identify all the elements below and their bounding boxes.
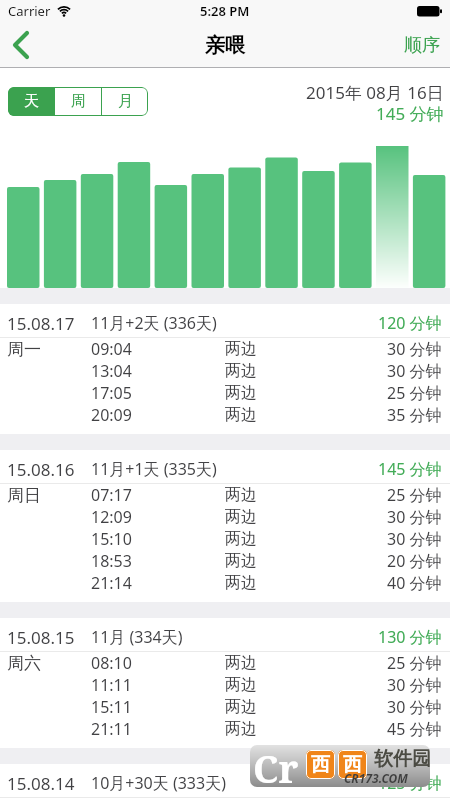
staticText: 21:14 [91,572,132,594]
staticText: 120 分钟 [378,312,442,334]
staticText: 30 分钟 [387,674,442,696]
staticText: 两边 [225,653,257,673]
staticText: 18:53 [91,550,132,572]
button[interactable]: 天 [8,87,54,116]
staticText: 15.08.16 [7,458,75,480]
button[interactable]: 周日 [0,484,450,506]
staticText: 20:09 [91,404,132,426]
staticText: 145 分钟 [378,458,442,480]
staticText: 10月+30天 (333天) [91,772,226,794]
staticText: 两边 [225,405,257,425]
staticText: 2015年 08月 16日 [306,81,444,104]
staticText: 15.08.17 [7,312,75,334]
button[interactable]: 20:09 [0,404,450,426]
staticText: CR173.COM [344,770,408,786]
staticText: 30 分钟 [387,696,442,718]
staticText: 顺序 [404,34,440,57]
staticText: 西 [343,753,362,777]
staticText: 15:10 [91,528,132,550]
staticText: 21:11 [91,718,132,740]
staticText: 30 分钟 [387,506,442,528]
staticText: 15:11 [91,696,132,718]
staticText: 两边 [225,675,257,695]
staticText: 西 [311,753,330,777]
staticText: 30 分钟 [387,360,442,382]
button[interactable]: 周 [55,87,101,116]
staticText: Carrier [8,2,51,20]
staticText: 软件园 [374,747,430,771]
button[interactable]: 周一 [0,338,450,360]
staticText: 11:11 [91,674,132,696]
staticText: 天 [24,92,39,111]
staticText: Cr [253,745,299,784]
staticText: 两边 [225,383,257,403]
staticText: 25 分钟 [387,382,442,404]
button[interactable] [11,30,33,60]
staticText: 145 分钟 [376,102,444,125]
staticText: 两边 [225,697,257,717]
staticText: 两边 [225,719,257,739]
staticText: 17:05 [91,382,132,404]
staticText: 15.08.14 [7,772,75,794]
staticText: 11月+1天 (335天) [91,458,217,480]
staticText: 07:17 [91,484,132,506]
staticText: 25 分钟 [387,652,442,674]
staticText: 月 [118,92,133,111]
staticText: 40 分钟 [387,572,442,594]
staticText: 35 分钟 [387,404,442,426]
staticText: 亲喂 [205,33,245,58]
button[interactable]: 15:11 [0,696,450,718]
staticText: 周六 [7,653,41,674]
staticText: 11月+2天 (336天) [91,312,217,334]
button[interactable]: 月 [102,87,148,116]
staticText: 两边 [225,529,257,549]
button[interactable]: 顺序 [404,34,440,57]
button[interactable]: 15:10 [0,528,450,550]
staticText: 两边 [225,573,257,593]
staticText: 两边 [225,485,257,505]
staticText: 30 分钟 [387,528,442,550]
staticText: 13:04 [91,360,132,382]
staticText: 09:04 [91,338,132,360]
staticText: 两边 [225,339,257,359]
staticText: 30 分钟 [387,338,442,360]
button[interactable]: 13:04 [0,360,450,382]
staticText: 08:10 [91,652,132,674]
staticText: 两边 [225,361,257,381]
staticText: 125 分钟 [378,772,442,794]
staticText: 周 [71,92,86,111]
button[interactable]: 18:53 [0,550,450,572]
staticText: 两边 [225,551,257,571]
button[interactable]: 12:09 [0,506,450,528]
staticText: 5:28 PM [200,2,250,20]
button[interactable]: 21:11 [0,718,450,740]
button[interactable]: 周六 [0,652,450,674]
button[interactable]: 21:14 [0,572,450,594]
staticText: 12:09 [91,506,132,528]
staticText: 11月 (334天) [91,626,183,648]
staticText: 20 分钟 [387,550,442,572]
staticText: 两边 [225,507,257,527]
staticText: 45 分钟 [387,718,442,740]
staticText: 25 分钟 [387,484,442,506]
button[interactable]: 17:05 [0,382,450,404]
staticText: 15.08.15 [7,626,75,648]
staticText: 130 分钟 [378,626,442,648]
staticText: 周日 [7,485,41,506]
staticText: 周一 [7,339,41,360]
button[interactable]: 11:11 [0,674,450,696]
